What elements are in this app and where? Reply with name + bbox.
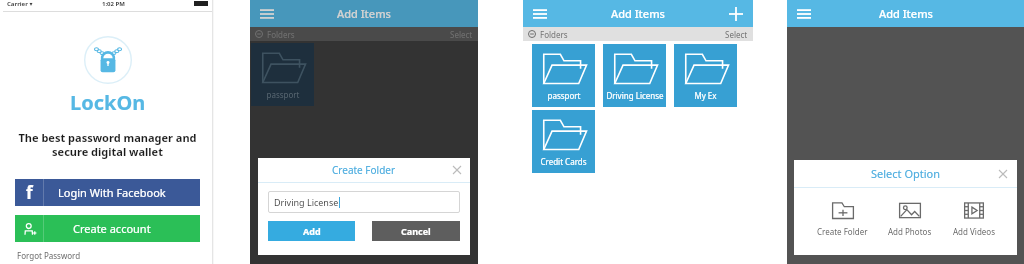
button[interactable]: Close: [450, 163, 464, 177]
button[interactable]: f: [15, 179, 200, 206]
staticText: Select: [725, 29, 748, 40]
staticText: Carrier ▾: [7, 0, 33, 8]
staticText: Add: [303, 225, 321, 237]
button[interactable]: Menu: [257, 4, 277, 24]
staticText: Create Folder: [817, 226, 868, 237]
button[interactable]: Menu: [794, 4, 814, 24]
staticText: The best password manager and secure dig…: [18, 130, 197, 159]
staticText: Driving License: [274, 196, 339, 208]
button[interactable]: passport: [532, 44, 595, 107]
staticText: Add Items: [879, 6, 933, 21]
staticText: 1:02 PM: [102, 0, 125, 8]
staticText: LockOn: [70, 89, 146, 116]
button[interactable]: Select: [450, 29, 473, 40]
button[interactable]: passport: [251, 43, 314, 106]
button[interactable]: Driving License: [268, 191, 460, 213]
button[interactable]: Add Photos: [884, 200, 936, 237]
staticText: Cancel: [401, 225, 431, 237]
button[interactable]: Forgot Password: [17, 250, 81, 261]
button[interactable]: Add: [726, 4, 746, 24]
staticText: Credit Cards: [540, 156, 587, 167]
staticText: My Ex: [694, 90, 717, 101]
staticText: Login With Facebook: [58, 185, 166, 200]
staticText: Add Items: [337, 6, 391, 21]
staticText: Driving License: [606, 90, 664, 101]
staticText: Add Videos: [953, 226, 995, 237]
button[interactable]: Select: [725, 29, 748, 40]
button[interactable]: Cancel: [372, 221, 460, 241]
button[interactable]: Add: [268, 221, 355, 241]
staticText: Forgot Password: [17, 250, 81, 261]
staticText: Folders: [540, 29, 568, 40]
staticText: f: [26, 181, 33, 204]
button[interactable]: Driving License: [603, 44, 666, 107]
button[interactable]: Menu: [530, 4, 550, 24]
button[interactable]: Add Videos: [949, 200, 999, 237]
staticText: Select: [450, 29, 473, 40]
staticText: Add Photos: [888, 226, 932, 237]
staticText: Create Folder: [332, 163, 396, 177]
staticText: Add Items: [611, 6, 665, 21]
staticText: Folders: [267, 29, 295, 40]
staticText: passport: [547, 90, 581, 101]
button[interactable]: Create account: [15, 215, 200, 242]
button[interactable]: Create Folder: [813, 200, 872, 237]
button[interactable]: Credit Cards: [532, 110, 595, 173]
button[interactable]: My Ex: [674, 44, 737, 107]
staticText: Create account: [73, 221, 151, 236]
staticText: Select Option: [871, 166, 941, 181]
staticText: passport: [266, 89, 300, 100]
button[interactable]: Close: [996, 167, 1010, 181]
